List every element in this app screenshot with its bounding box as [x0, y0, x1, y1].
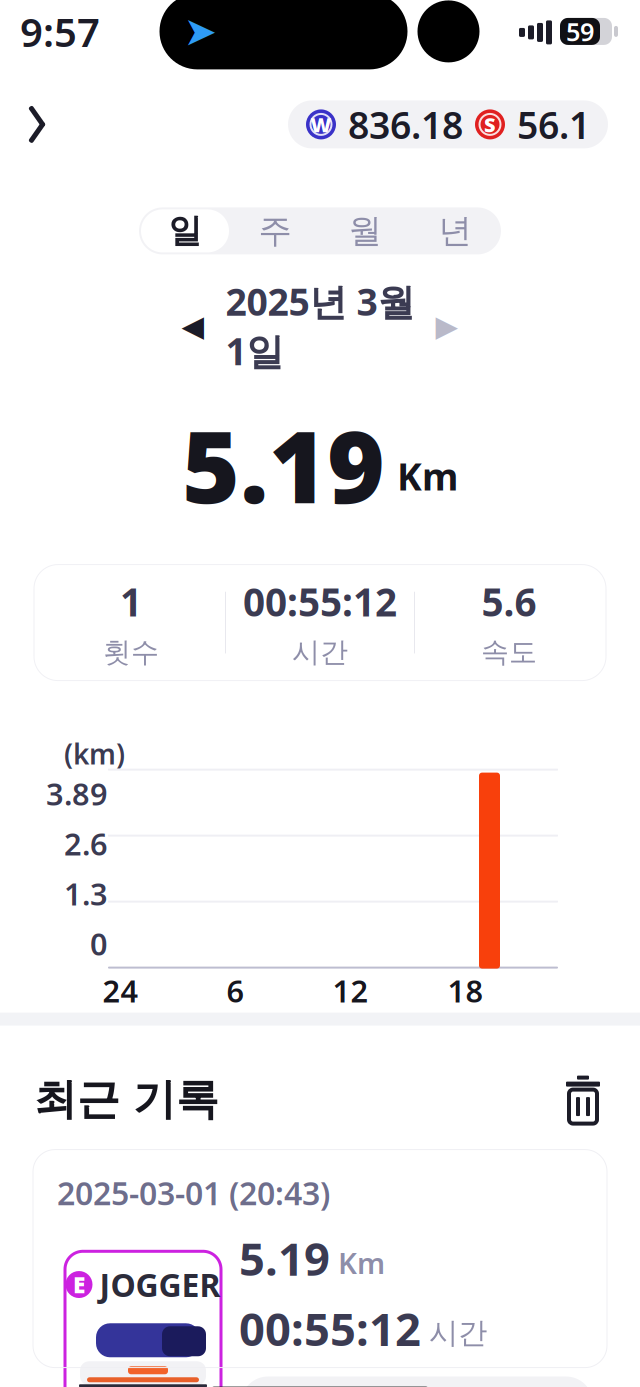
staticText: W	[310, 111, 331, 138]
button[interactable]: W	[288, 100, 608, 148]
staticText: 주	[258, 210, 291, 251]
staticText: ◀	[181, 309, 204, 343]
staticText: 2025-03-01 (20:43)	[57, 1172, 330, 1214]
staticText: 59	[566, 15, 594, 48]
staticText: (km)	[64, 735, 125, 772]
button[interactable]: 2025-03-01 (20:43)	[33, 1150, 607, 1368]
staticText: 24	[102, 970, 138, 1011]
button[interactable]: Next day	[420, 302, 474, 350]
staticText: 월	[348, 210, 381, 251]
staticText: 시간	[429, 1315, 487, 1351]
staticText: 18	[447, 970, 483, 1011]
staticText: 시간	[292, 635, 348, 669]
staticText: 년	[438, 210, 471, 251]
staticText: 일	[168, 210, 201, 251]
staticText: 56.1	[517, 100, 590, 149]
staticText: 2025년 3월 1일	[225, 276, 414, 376]
staticText: 5.19	[239, 1228, 330, 1288]
staticText: ▶	[435, 309, 458, 343]
staticText: 속도	[481, 635, 537, 669]
staticText: 횟수	[103, 635, 159, 669]
button[interactable]: Back	[0, 87, 74, 161]
staticText: 12	[332, 970, 368, 1011]
staticText: 5.6	[481, 576, 536, 627]
staticText: 1.3	[64, 873, 108, 914]
button[interactable]: Delete records	[552, 1069, 614, 1131]
staticText: E	[73, 1269, 85, 1300]
staticText: 3.89	[46, 773, 108, 814]
staticText: JOGGER	[99, 1263, 220, 1306]
staticText: 1	[120, 576, 142, 627]
staticText: Km	[338, 1243, 385, 1282]
staticText: +121.36	[294, 1380, 424, 1387]
staticText: 5.19	[182, 400, 385, 531]
button[interactable]: 주	[230, 207, 320, 254]
staticText: 9:57	[20, 5, 100, 58]
staticText: 0	[90, 923, 108, 964]
staticText: 836.18	[348, 100, 463, 149]
button[interactable]: 월	[320, 207, 410, 254]
staticText: 6	[226, 970, 244, 1011]
button[interactable]: 년	[410, 207, 500, 254]
staticText: 최근 기록	[34, 1073, 219, 1126]
staticText: Km	[397, 451, 458, 501]
staticText: 00:55:12	[239, 1298, 421, 1358]
staticText: S	[484, 111, 496, 138]
staticText: ➤	[183, 9, 217, 54]
staticText: 2.6	[64, 823, 108, 864]
button[interactable]: 일	[140, 207, 230, 254]
staticText: 00:55:12	[243, 576, 397, 627]
button[interactable]: Previous day	[166, 302, 220, 350]
